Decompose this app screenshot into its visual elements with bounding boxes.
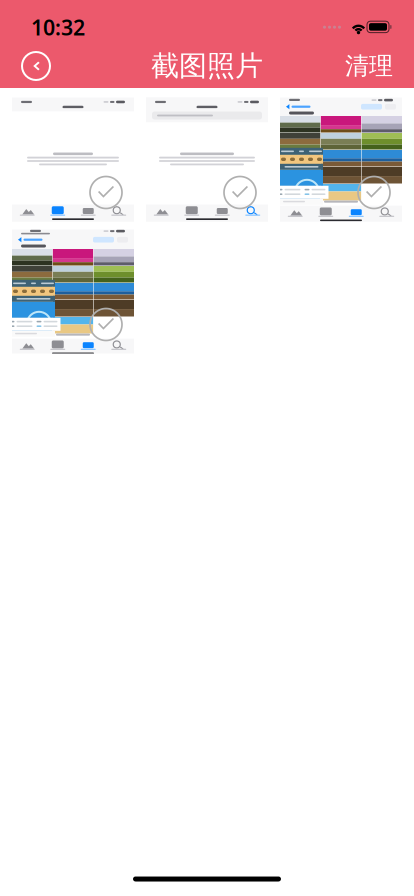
button[interactable]: Screenshot [146, 97, 268, 221]
button[interactable]: 清理 [335, 43, 403, 89]
staticText: 清理 [345, 51, 393, 81]
staticText: 截图照片 [151, 49, 263, 83]
button[interactable]: Back [14, 44, 58, 88]
button[interactable]: Screenshot [12, 229, 134, 353]
staticText: 10:32 [31, 13, 85, 41]
button[interactable]: Screenshot [12, 97, 134, 221]
button[interactable]: Screenshot [280, 97, 402, 221]
